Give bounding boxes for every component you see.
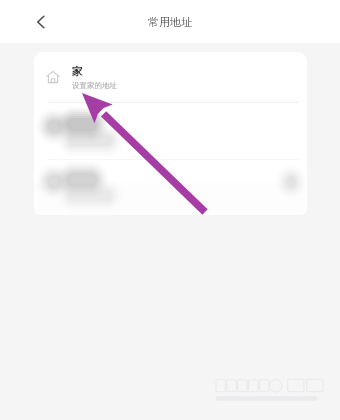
button[interactable]: [34, 160, 307, 212]
staticText: 家: [72, 65, 83, 78]
staticText: 设置家的地址: [72, 81, 117, 90]
button[interactable]: 家: [34, 52, 307, 102]
staticText: 常用地址: [148, 15, 192, 29]
button[interactable]: [34, 103, 307, 159]
button[interactable]: Back: [26, 7, 56, 37]
